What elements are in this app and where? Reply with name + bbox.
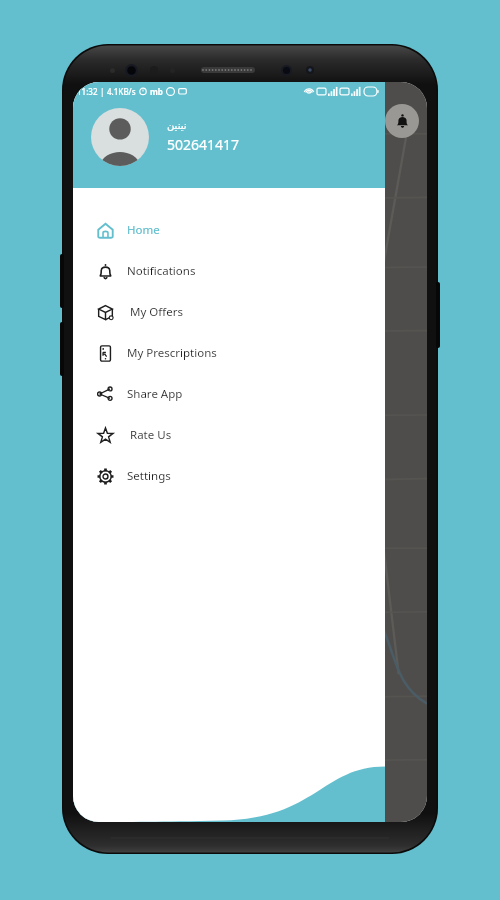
staticText: mb bbox=[150, 86, 163, 97]
staticText: rk Hospital bbox=[73, 122, 113, 133]
button[interactable]: Notifications bbox=[73, 251, 385, 291]
staticText: 4.1KB/s bbox=[107, 86, 136, 97]
staticText: نينين bbox=[167, 120, 187, 132]
staticText: Settings bbox=[127, 468, 171, 484]
staticText: SATYAPR NAGA bbox=[74, 287, 107, 309]
button[interactable]: Share App bbox=[73, 374, 385, 414]
staticText: 11:32 bbox=[77, 86, 98, 97]
button[interactable]: Rate Us bbox=[73, 415, 385, 455]
staticText: Share App bbox=[127, 386, 183, 402]
button[interactable]: Notifications bbox=[385, 104, 419, 138]
staticText: My Offers bbox=[130, 304, 183, 320]
button[interactable]: My Offers bbox=[73, 292, 385, 332]
staticText: | bbox=[98, 86, 107, 97]
staticText: 502641417 bbox=[167, 135, 240, 154]
button[interactable]: نينين bbox=[91, 108, 385, 166]
button[interactable]: Settings bbox=[73, 456, 385, 496]
staticText: Rate Us bbox=[130, 427, 172, 443]
staticText: Home bbox=[127, 222, 160, 238]
staticText: RA me bbox=[107, 383, 118, 403]
staticText: My Prescriptions bbox=[127, 345, 217, 361]
button[interactable]: Home bbox=[73, 210, 385, 250]
staticText: XMANPU COLONY bbox=[73, 477, 107, 499]
staticText: Notifications bbox=[127, 263, 196, 279]
button[interactable]: My Prescriptions bbox=[73, 333, 385, 373]
